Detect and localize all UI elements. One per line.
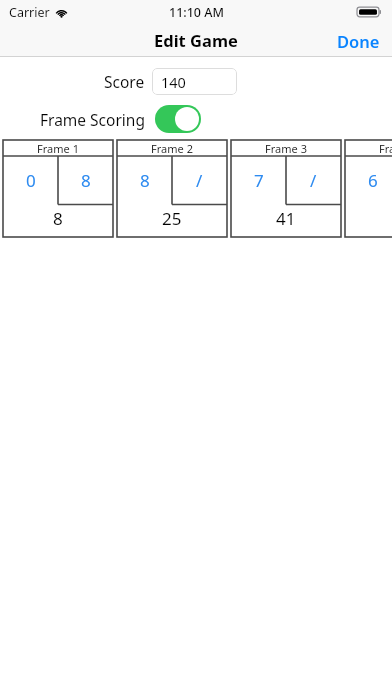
staticText: Done	[337, 30, 380, 52]
staticText: Frame 2	[151, 141, 193, 156]
staticText: 11:10 AM	[169, 4, 224, 21]
staticText: 41	[276, 207, 296, 230]
button[interactable]: 140	[152, 68, 237, 95]
staticText: 8	[81, 169, 91, 192]
staticText: 25	[162, 207, 182, 230]
staticText: 8	[53, 207, 63, 230]
staticText: 8	[140, 169, 150, 192]
button[interactable]: Frame 4	[345, 140, 392, 237]
staticText: Score	[104, 71, 145, 92]
staticText: Frame 3	[265, 141, 307, 156]
button[interactable]: Frame 1	[3, 140, 113, 237]
button[interactable]: Frame Scoring toggle	[155, 105, 201, 133]
staticText: Carrier	[9, 4, 50, 21]
staticText: /	[310, 169, 317, 192]
staticText: 0	[26, 169, 36, 192]
button[interactable]: Frame 3	[231, 140, 341, 237]
staticText: Frame 1	[37, 141, 79, 156]
staticText: 140	[161, 72, 186, 92]
staticText: /	[196, 169, 203, 192]
staticText: Frame Scoring	[40, 109, 145, 130]
button[interactable]: Done	[325, 25, 392, 57]
staticText: 7	[254, 169, 264, 192]
staticText: Edit Game	[154, 29, 238, 51]
button[interactable]: Frame 2	[117, 140, 227, 237]
staticText: Frame 4	[379, 141, 392, 156]
staticText: 6	[368, 169, 378, 192]
